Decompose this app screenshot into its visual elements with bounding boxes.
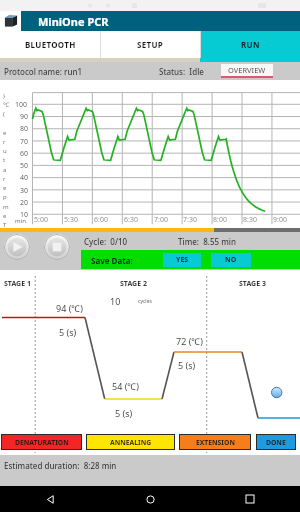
staticText: SETUP — [137, 39, 164, 50]
staticText: T — [3, 221, 7, 229]
staticText: r — [3, 175, 6, 183]
staticText: DENATURATION — [15, 438, 69, 447]
staticText: STAGE 3 — [239, 279, 266, 289]
staticText: RUN — [241, 39, 260, 50]
button[interactable]: Home — [100, 486, 200, 512]
staticText: a — [3, 166, 7, 174]
staticText: 60 — [20, 149, 29, 159]
staticText: 6:30 — [124, 215, 138, 225]
staticText: ) — [3, 92, 5, 100]
staticText: 80 — [20, 124, 29, 134]
staticText: DONE — [266, 438, 286, 447]
staticText: BLUETOOTH — [25, 39, 76, 50]
staticText: NO — [225, 255, 237, 265]
staticText: Time: 8.55 min — [178, 236, 236, 247]
staticText: 9:00 — [273, 215, 287, 225]
staticText: r — [3, 138, 6, 146]
staticText: 100 — [15, 100, 28, 110]
staticText: Protocol name: run1 — [4, 66, 83, 77]
button[interactable]: SETUP — [101, 31, 200, 58]
button[interactable]: ANNEALING — [87, 435, 174, 449]
staticText: e — [3, 129, 7, 137]
staticText: OVERVIEW — [228, 65, 266, 75]
staticText: 10 — [110, 295, 121, 307]
staticText: e — [3, 184, 7, 192]
staticText: 5:00 — [34, 215, 48, 225]
staticText: Save Data: — [91, 255, 133, 266]
button[interactable]: DONE — [257, 435, 295, 449]
staticText: 10 — [20, 210, 29, 220]
button[interactable]: NO — [211, 253, 251, 267]
staticText: u — [3, 147, 7, 155]
staticText: e — [3, 212, 7, 220]
staticText: t — [3, 156, 6, 164]
staticText: 94 (℃) — [56, 302, 83, 314]
staticText: 6:00 — [94, 215, 108, 225]
staticText: Estimated duration: 8:28 min — [4, 460, 117, 471]
staticText: STAGE 1 — [4, 279, 31, 289]
staticText: min — [15, 217, 26, 225]
button[interactable]: Stop — [44, 234, 70, 260]
staticText: 40 — [20, 173, 29, 183]
staticText: m — [3, 203, 9, 211]
staticText: 90 — [20, 112, 29, 122]
staticText: 8:00 — [213, 215, 227, 225]
staticText: YES — [176, 255, 189, 265]
staticText: 5 (s) — [115, 407, 133, 419]
staticText: STAGE 2 — [120, 279, 147, 289]
button[interactable]: Recent apps — [200, 486, 300, 512]
staticText: 20 — [20, 198, 29, 208]
staticText: 54 (℃) — [112, 380, 139, 392]
button[interactable]: YES — [163, 253, 201, 267]
staticText: Cycle: 0/10 — [84, 236, 128, 247]
button[interactable]: Start — [4, 234, 30, 260]
staticText: 70 — [20, 137, 29, 147]
staticText: MiniOne PCR — [38, 14, 109, 29]
staticText: Status: Idle — [159, 66, 204, 77]
staticText: 72 (℃) — [176, 335, 203, 347]
staticText: cycles — [138, 298, 152, 305]
staticText: ANNEALING — [110, 438, 152, 447]
staticText: 50 — [20, 161, 29, 171]
staticText: 5 (s) — [59, 326, 77, 338]
button[interactable]: BLUETOOTH — [0, 31, 100, 58]
staticText: 5 (s) — [178, 359, 196, 371]
button[interactable]: RUN — [201, 31, 300, 58]
staticText: 5:30 — [64, 215, 78, 225]
button[interactable]: OVERVIEW — [221, 64, 273, 78]
staticText: 7:30 — [183, 215, 197, 225]
staticText: EXTENSION — [196, 438, 235, 447]
button[interactable]: EXTENSION — [180, 435, 250, 449]
button[interactable]: Back — [0, 486, 100, 512]
staticText: 30 — [20, 186, 29, 196]
staticText: 7:00 — [154, 215, 168, 225]
staticText: 8:30 — [243, 215, 257, 225]
staticText: ℃ — [3, 101, 9, 109]
staticText: p — [3, 193, 7, 201]
staticText: ( — [3, 110, 5, 118]
button[interactable]: DENATURATION — [2, 435, 81, 449]
